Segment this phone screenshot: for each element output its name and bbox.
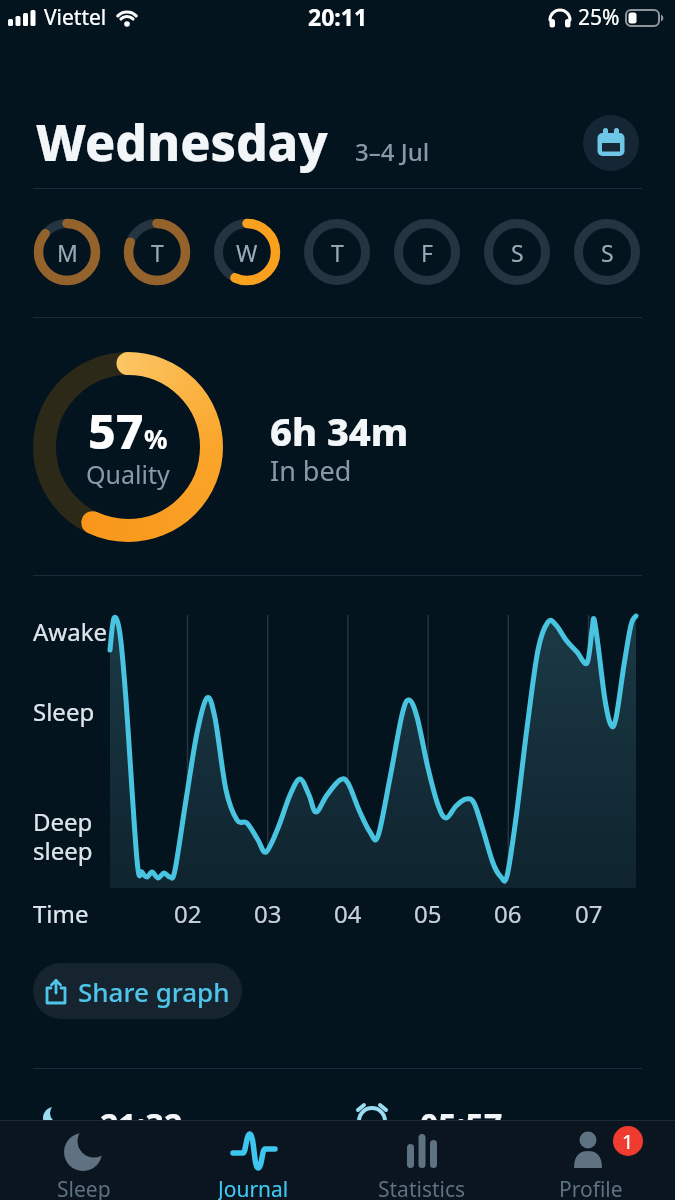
staticText: 06: [494, 897, 522, 930]
staticText: T: [151, 237, 164, 268]
staticText: F: [421, 237, 433, 268]
button[interactable]: Sleep: [14, 1128, 154, 1200]
staticText: Share graph: [78, 974, 230, 1009]
staticText: Viettel: [44, 3, 107, 32]
button[interactable]: T: [304, 219, 370, 285]
button[interactable]: Statistics: [352, 1128, 492, 1200]
button[interactable]: [583, 115, 639, 171]
staticText: 3–4 Jul: [355, 135, 430, 168]
staticText: 6h 34m: [270, 405, 409, 457]
staticText: Deep sleep: [33, 805, 93, 867]
staticText: Sleep: [33, 695, 95, 728]
staticText: 1: [622, 1128, 634, 1155]
button[interactable]: T: [124, 219, 190, 285]
button[interactable]: M: [34, 219, 100, 285]
staticText: S: [601, 237, 614, 268]
staticText: 05: [414, 897, 442, 930]
staticText: %: [144, 421, 168, 456]
button[interactable]: W: [214, 219, 280, 285]
staticText: 03: [254, 897, 282, 930]
staticText: Journal: [218, 1175, 289, 1200]
staticText: 21:32: [100, 1103, 183, 1147]
staticText: In bed: [270, 452, 352, 489]
staticText: 05:57: [420, 1103, 503, 1147]
staticText: W: [236, 237, 258, 268]
staticText: T: [331, 237, 344, 268]
staticText: Awake: [33, 615, 108, 648]
staticText: S: [511, 237, 524, 268]
button[interactable]: Share graph: [33, 963, 242, 1019]
button[interactable]: Profile: [521, 1128, 661, 1200]
staticText: 20:11: [308, 1, 368, 32]
staticText: 04: [334, 897, 362, 930]
staticText: Time: [33, 897, 89, 930]
staticText: 02: [174, 897, 202, 930]
staticText: Profile: [559, 1175, 623, 1200]
button[interactable]: S: [484, 219, 550, 285]
staticText: Quality: [86, 457, 170, 491]
staticText: Statistics: [378, 1175, 466, 1200]
staticText: Sleep: [57, 1175, 111, 1200]
staticText: 25%: [578, 3, 620, 32]
staticText: 57: [88, 398, 144, 463]
staticText: Wednesday: [36, 108, 328, 176]
button[interactable]: F: [394, 219, 460, 285]
button[interactable]: Journal: [183, 1128, 323, 1200]
button[interactable]: S: [574, 219, 640, 285]
staticText: M: [57, 237, 78, 268]
staticText: 07: [575, 897, 603, 930]
